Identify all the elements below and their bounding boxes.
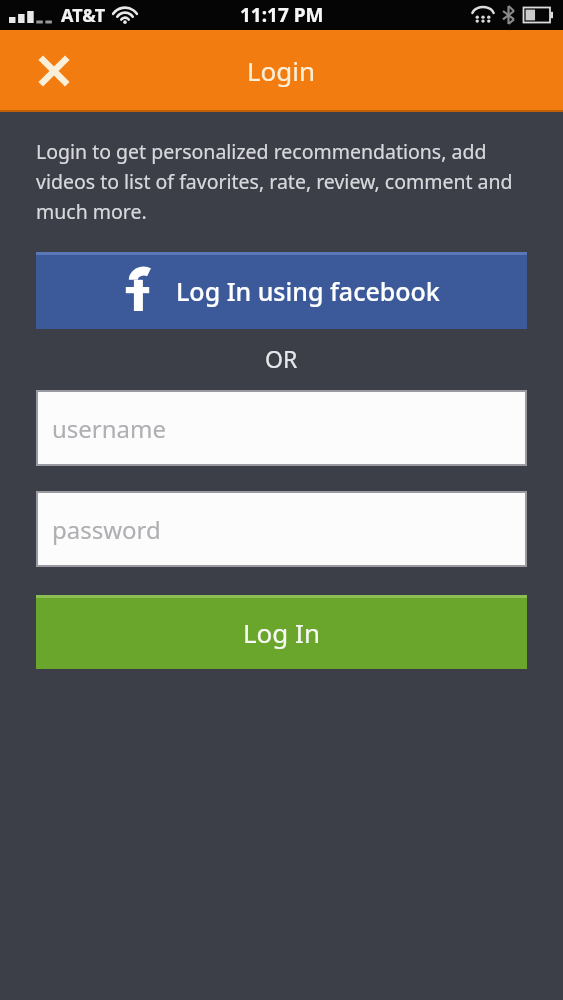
staticText: OR xyxy=(265,343,298,374)
staticText: Login xyxy=(247,53,316,88)
button[interactable]: Log In using facebook xyxy=(36,252,527,329)
staticText: Log In using facebook xyxy=(176,274,440,308)
staticText: 11:17 PM xyxy=(240,2,324,28)
staticText: username xyxy=(52,412,167,445)
button[interactable]: Log In xyxy=(36,595,527,669)
staticText: Log In xyxy=(243,615,320,650)
button[interactable]: password xyxy=(38,493,525,565)
staticText: AT&T xyxy=(61,3,106,28)
button[interactable]: username xyxy=(38,392,525,464)
staticText: Login to get personalized recommendation… xyxy=(36,138,523,224)
staticText: password xyxy=(52,513,161,546)
button[interactable]: Close xyxy=(30,47,78,95)
